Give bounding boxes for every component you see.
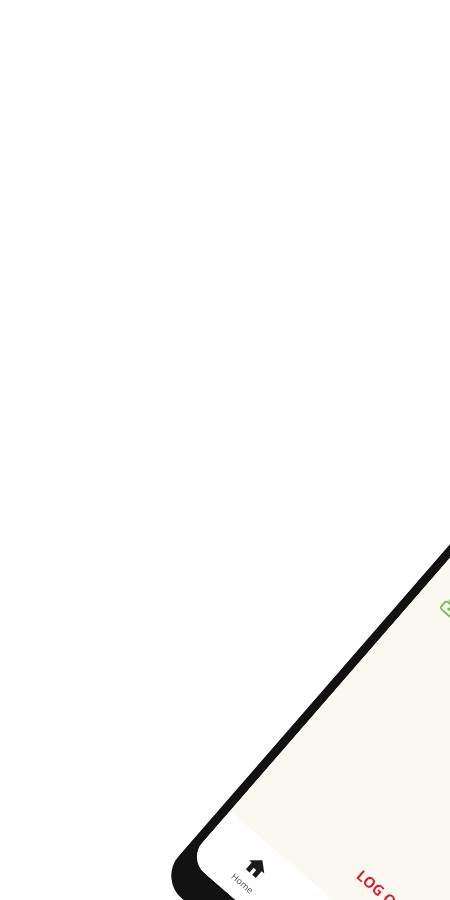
button[interactable]: LOG OUT bbox=[237, 761, 450, 900]
button[interactable]: Home bbox=[188, 811, 316, 900]
button[interactable]: Meal bookings bbox=[274, 885, 402, 900]
button[interactable]: Change password bbox=[410, 567, 450, 827]
staticText: LOG OUT bbox=[353, 865, 416, 900]
other: Change password bbox=[436, 591, 450, 622]
button[interactable]: Calendar synchronization bbox=[442, 531, 450, 791]
staticText: Home bbox=[229, 870, 257, 896]
other: Home bbox=[241, 851, 272, 882]
